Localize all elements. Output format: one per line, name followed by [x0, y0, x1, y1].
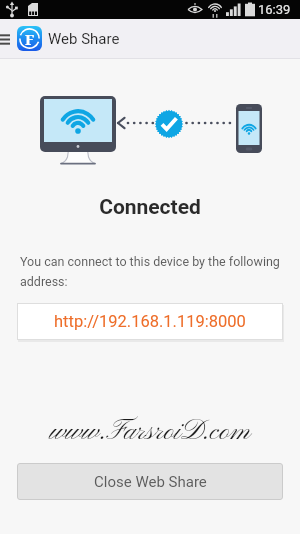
staticText: 16:39: [258, 2, 291, 17]
staticText: F: [25, 29, 35, 49]
staticText: You can connect to this device by the fo…: [20, 254, 283, 289]
button[interactable]: Close Web Share: [17, 463, 283, 500]
staticText: Close Web Share: [94, 473, 207, 491]
staticText: http://192.168.1.119:8000: [54, 312, 246, 331]
staticText: Connected: [0, 195, 300, 220]
button[interactable]: Navigation menu: [0, 19, 14, 59]
staticText: Web Share: [48, 30, 120, 48]
staticText: www.FarsroiD.com: [0, 414, 300, 450]
